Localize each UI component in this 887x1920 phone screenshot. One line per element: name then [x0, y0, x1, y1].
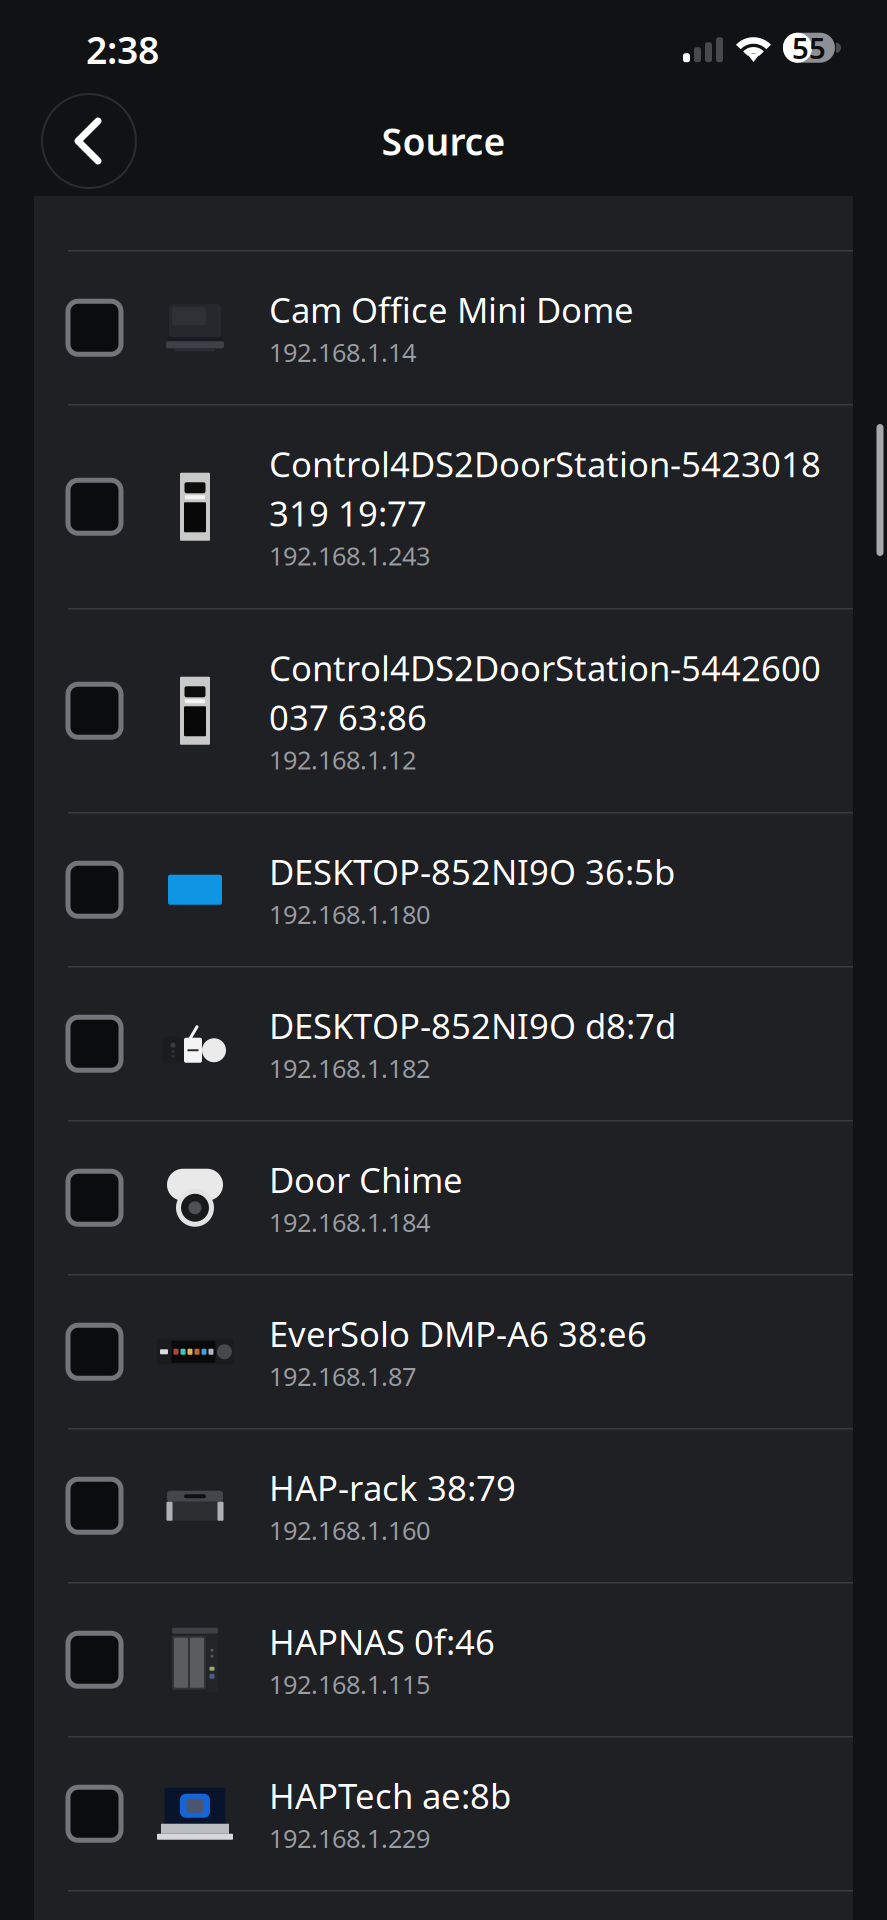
staticText: 192.168.1.160 [269, 1513, 430, 1547]
button[interactable]: HAPTech ae:8b [34, 1737, 853, 1890]
button[interactable]: Back [42, 94, 136, 188]
staticText: 192.168.1.184 [269, 1205, 430, 1239]
staticText: HAPNAS 0f:46 [269, 1618, 495, 1664]
button[interactable]: Door Chime [34, 1121, 853, 1274]
staticText: 192.168.1.182 [269, 1051, 430, 1085]
button[interactable]: Control4DS2DoorStation-5423018 [34, 405, 853, 608]
staticText: Door Chime [269, 1156, 463, 1202]
button[interactable]: HAPNAS 0f:46 [34, 1583, 853, 1736]
staticText: EverSolo DMP-A6 38:e6 [269, 1310, 647, 1356]
staticText: 192.168.1.87 [269, 1359, 416, 1393]
staticText: 192.168.1.14 [269, 335, 416, 369]
staticText: DESKTOP-852NI9O d8:7d [269, 1002, 676, 1048]
staticText: 192.168.1.12 [269, 743, 416, 777]
staticText: 319 19:77 [269, 490, 427, 536]
staticText: 192.168.1.180 [269, 897, 430, 931]
button[interactable]: DESKTOP-852NI9O 36:5b [34, 813, 853, 966]
button[interactable]: Cam Office Mini Dome [34, 251, 853, 404]
staticText: 192.168.1.243 [269, 539, 430, 573]
staticText: HAPTech ae:8b [269, 1772, 511, 1818]
staticText: 55 [792, 28, 826, 67]
staticText: 2:38 [86, 25, 159, 74]
staticText: 192.168.1.229 [269, 1821, 430, 1855]
button[interactable]: HAP-rack 38:79 [34, 1429, 853, 1582]
staticText: 037 63:86 [269, 694, 427, 740]
button[interactable]: EverSolo DMP-A6 38:e6 [34, 1275, 853, 1428]
staticText: Control4DS2DoorStation-5442600 [269, 645, 821, 691]
staticText: Control4DS2DoorStation-5423018 [269, 441, 821, 487]
staticText: HAP-rack 38:79 [269, 1464, 516, 1510]
button[interactable]: Control4DS2DoorStation-5442600 [34, 609, 853, 812]
staticText: Cam Office Mini Dome [269, 286, 634, 332]
staticText: 192.168.1.115 [269, 1667, 430, 1701]
staticText: DESKTOP-852NI9O 36:5b [269, 848, 675, 894]
button[interactable]: DESKTOP-852NI9O d8:7d [34, 967, 853, 1120]
staticText: Source [381, 116, 505, 166]
